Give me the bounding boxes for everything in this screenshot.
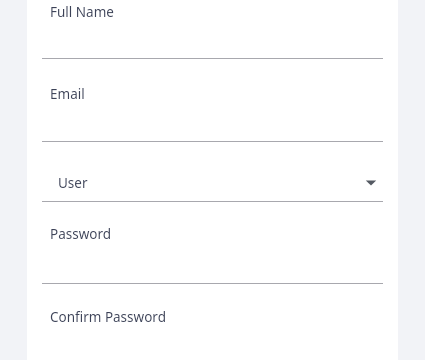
staticText: Email <box>50 85 85 103</box>
staticText: User <box>58 174 88 192</box>
staticText: Full Name <box>50 3 114 21</box>
button[interactable]: Select role <box>42 165 383 201</box>
staticText: Confirm Password <box>50 308 166 326</box>
staticText: Password <box>50 225 112 243</box>
